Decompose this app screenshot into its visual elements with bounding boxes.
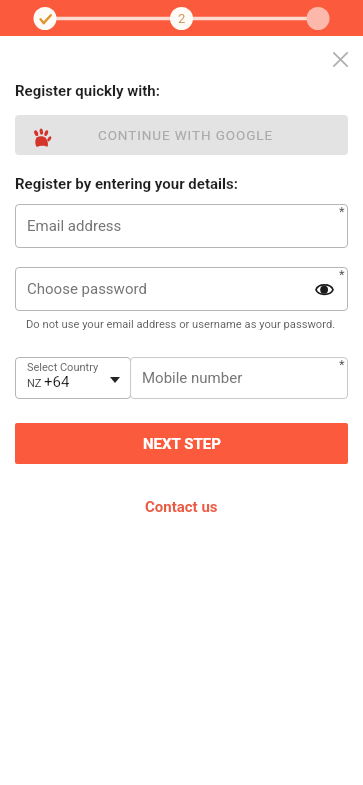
staticText: Do not use your email address or usernam… [26, 318, 336, 331]
staticText: * [339, 357, 345, 372]
button[interactable]: Choose password [15, 267, 348, 311]
staticText: * [339, 204, 345, 219]
button[interactable]: NEXT STEP [15, 423, 348, 464]
staticText: * [339, 267, 345, 282]
staticText: Register quickly with: [15, 82, 160, 100]
button[interactable]: Select Country [15, 357, 131, 399]
button[interactable]: Email address [15, 204, 348, 248]
button[interactable]: CONTINUE WITH GOOGLE [15, 115, 348, 155]
staticText: 2 [178, 11, 186, 26]
button[interactable]: Contact us [139, 495, 224, 519]
button[interactable]: Show password [315, 283, 334, 296]
staticText: Select Country [27, 361, 99, 374]
button[interactable]: Close [327, 46, 353, 72]
staticText: Email address [27, 217, 122, 235]
staticText: +64 [44, 373, 70, 391]
staticText: Register by entering your details: [15, 175, 238, 193]
staticText: CONTINUE WITH GOOGLE [98, 127, 274, 143]
button[interactable]: Mobile number [130, 357, 348, 399]
staticText: Choose password [27, 280, 147, 298]
staticText: NEXT STEP [143, 435, 221, 453]
staticText: NZ [27, 377, 42, 390]
staticText: Mobile number [142, 369, 243, 387]
